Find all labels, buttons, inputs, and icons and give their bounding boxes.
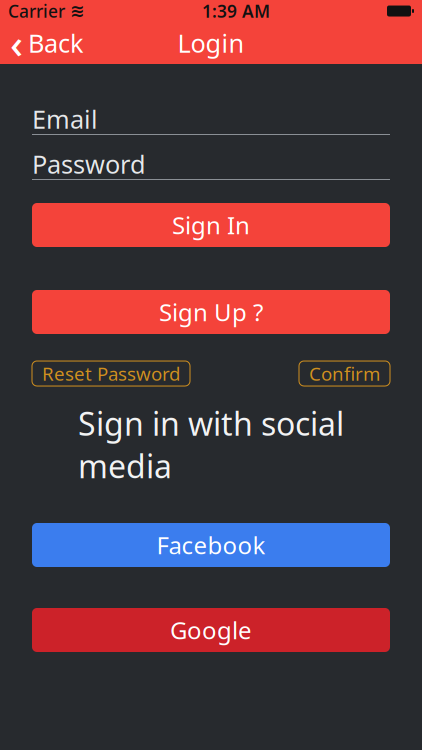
staticText: Sign Up ? <box>159 296 263 328</box>
staticText: ‹ <box>10 16 23 69</box>
staticText: Facebook <box>156 529 265 561</box>
staticText: Carrier <box>8 0 65 22</box>
staticText: ≋ <box>70 1 85 21</box>
staticText: Sign in with social media <box>78 402 344 487</box>
staticText: Sign In <box>172 209 250 241</box>
staticText: Reset Password <box>42 361 180 386</box>
button[interactable]: Confirm <box>299 361 390 386</box>
staticText: Back <box>28 26 84 60</box>
button[interactable]: Sign In <box>32 203 390 247</box>
button[interactable]: Reset Password <box>32 361 190 386</box>
button[interactable]: Google <box>32 608 390 652</box>
staticText: Email <box>32 102 98 136</box>
staticText <box>65 0 70 22</box>
button[interactable]: Facebook <box>32 523 390 567</box>
staticText: Confirm <box>309 361 380 386</box>
staticText: Google <box>170 614 252 646</box>
staticText: Login <box>177 26 244 60</box>
button[interactable]: Sign Up ? <box>32 290 390 334</box>
staticText: Password <box>32 147 146 181</box>
staticText: 1:39 AM <box>202 0 270 22</box>
button[interactable]: ‹ <box>0 22 94 64</box>
